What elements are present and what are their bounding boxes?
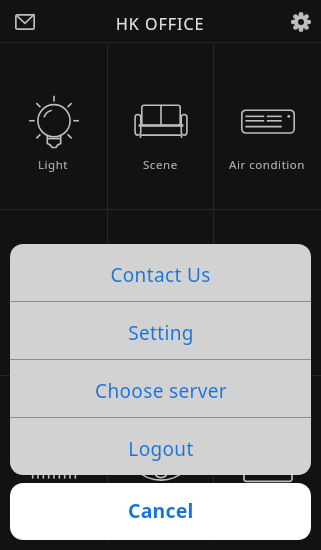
staticText: Setting — [128, 320, 194, 346]
staticText: HK OFFICE — [116, 13, 205, 35]
button[interactable]: Setting — [10, 302, 311, 359]
button[interactable]: Camera — [214, 210, 321, 376]
button[interactable]: Choose server — [10, 360, 311, 417]
staticText: Contact Us — [110, 262, 211, 288]
staticText: Sensor — [140, 323, 181, 339]
staticText: Logout — [128, 436, 194, 462]
button[interactable]: Scene — [107, 44, 214, 210]
staticText: Light — [38, 157, 69, 173]
button[interactable]: Sensor — [107, 210, 214, 376]
button[interactable]: Light — [0, 44, 107, 210]
staticText: Cancel — [128, 497, 194, 524]
button[interactable]: Curtain — [0, 376, 107, 542]
button[interactable]: Cancel — [10, 483, 311, 540]
button[interactable]: Messages — [9, 6, 41, 38]
staticText: Scene — [143, 157, 178, 173]
button[interactable]: Message — [214, 376, 321, 542]
button[interactable]: Logout — [10, 418, 311, 475]
button[interactable]: Air condition — [214, 44, 321, 210]
staticText: Choose server — [95, 378, 227, 404]
button[interactable]: Settings — [285, 6, 317, 38]
button[interactable]: Contact Us — [10, 244, 311, 301]
staticText: Air condition — [229, 157, 306, 173]
button[interactable]: Socket — [0, 210, 107, 376]
button[interactable]: Fan — [107, 376, 214, 542]
